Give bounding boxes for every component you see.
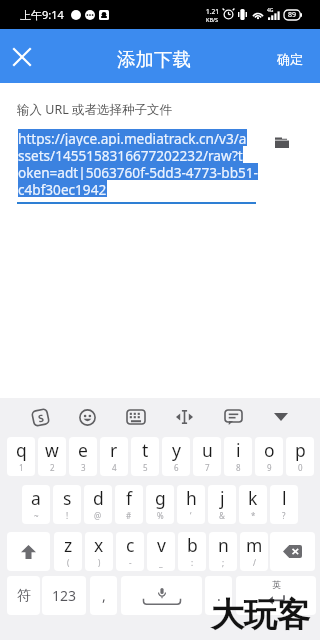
button[interactable]: Space / voice input: [121, 576, 202, 615]
staticText: 符: [17, 587, 31, 605]
button[interactable]: .: [205, 576, 232, 615]
button[interactable]: t: [131, 437, 159, 476]
staticText: 89: [288, 10, 297, 20]
button[interactable]: Messages: [217, 399, 249, 435]
button[interactable]: u: [193, 437, 221, 476]
button[interactable]: l: [270, 485, 298, 524]
button[interactable]: e: [69, 437, 97, 476]
staticText: a: [31, 486, 41, 510]
button[interactable]: x: [85, 532, 113, 571]
staticText: 4G: [267, 7, 274, 14]
button[interactable]: y: [162, 437, 190, 476]
button[interactable]: h: [177, 485, 205, 524]
button[interactable]: Enter, English mode: [236, 576, 316, 615]
staticText: n: [218, 533, 229, 557]
button[interactable]: p: [286, 437, 314, 476]
staticText: k: [248, 486, 258, 510]
staticText: 7: [205, 462, 210, 473]
button[interactable]: a: [22, 485, 50, 524]
button[interactable]: z: [54, 532, 82, 571]
staticText: 123: [52, 586, 77, 605]
staticText: 大玩客: [211, 594, 310, 636]
staticText: ssets/1455158316677202232/raw?t: [18, 146, 243, 163]
staticText: o: [264, 438, 275, 462]
staticText: ‘: [190, 510, 192, 521]
button[interactable]: Backspace: [270, 532, 315, 571]
button[interactable]: Hide keyboard: [265, 399, 297, 435]
button[interactable]: Sogou input: [24, 399, 56, 435]
button[interactable]: Keyboard layout: [120, 399, 152, 435]
staticText: @: [94, 510, 102, 521]
button[interactable]: s: [53, 485, 81, 524]
staticText: c4bf30ec1942: [18, 180, 107, 197]
staticText: e: [78, 438, 88, 462]
button[interactable]: Choose torrent file: [272, 132, 292, 152]
button[interactable]: r: [100, 437, 128, 476]
button[interactable]: c: [116, 532, 144, 571]
staticText: d: [93, 486, 104, 510]
staticText: 0: [298, 462, 303, 473]
button[interactable]: k: [239, 485, 267, 524]
staticText: ,: [102, 586, 106, 605]
staticText: 2: [50, 462, 55, 473]
button[interactable]: j: [208, 485, 236, 524]
staticText: -: [129, 557, 132, 568]
staticText: *: [251, 510, 256, 521]
staticText: (: [67, 557, 70, 568]
staticText: 添加下载: [117, 48, 191, 71]
staticText: 4: [112, 462, 117, 473]
button[interactable]: g: [146, 485, 174, 524]
staticText: 6: [174, 462, 179, 473]
button[interactable]: 确定: [273, 47, 307, 71]
staticText: m: [246, 533, 263, 557]
staticText: q: [16, 438, 27, 462]
button[interactable]: n: [209, 532, 237, 571]
button[interactable]: d: [84, 485, 112, 524]
button[interactable]: 123: [42, 576, 86, 615]
staticText: .: [217, 586, 221, 605]
staticText: oken=adt|5063760f-5dd3-4773-bb51-: [18, 163, 258, 180]
staticText: y: [172, 438, 181, 462]
staticText: S: [37, 410, 45, 425]
staticText: :: [191, 557, 194, 568]
staticText: i: [236, 438, 241, 462]
staticText: 输入 URL 或者选择种子文件: [17, 101, 172, 118]
staticText: _: [159, 557, 163, 568]
staticText: %: [157, 510, 164, 521]
staticText: w: [45, 438, 59, 462]
staticText: h: [186, 486, 197, 510]
button[interactable]: q: [7, 437, 35, 476]
staticText: u: [202, 438, 213, 462]
staticText: x: [94, 533, 104, 557]
button[interactable]: 符: [7, 576, 40, 615]
button[interactable]: f: [115, 485, 143, 524]
button[interactable]: Shift: [7, 532, 50, 571]
staticText: b: [187, 533, 198, 557]
button[interactable]: w: [38, 437, 66, 476]
staticText: 1: [19, 462, 24, 473]
staticText: s: [63, 486, 72, 510]
staticText: ): [98, 557, 101, 568]
button[interactable]: Move cursor: [168, 399, 200, 435]
button[interactable]: Emoji: [71, 399, 103, 435]
staticText: KB/S: [206, 16, 219, 23]
staticText: &: [219, 510, 225, 521]
staticText: 英: [272, 579, 281, 590]
staticText: 3: [81, 462, 86, 473]
staticText: ;: [222, 557, 225, 568]
staticText: 5: [143, 462, 148, 473]
staticText: ~: [34, 510, 39, 521]
staticText: l: [282, 486, 287, 510]
button[interactable]: m: [240, 532, 268, 571]
button[interactable]: v: [147, 532, 175, 571]
button[interactable]: Close: [4, 39, 40, 75]
button[interactable]: b: [178, 532, 206, 571]
button[interactable]: ,: [90, 576, 117, 615]
button[interactable]: o: [255, 437, 283, 476]
staticText: 8: [236, 462, 241, 473]
staticText: c: [126, 533, 135, 557]
staticText: g: [155, 486, 166, 510]
staticText: p: [295, 438, 306, 462]
staticText: 确定: [277, 51, 303, 67]
button[interactable]: i: [224, 437, 252, 476]
